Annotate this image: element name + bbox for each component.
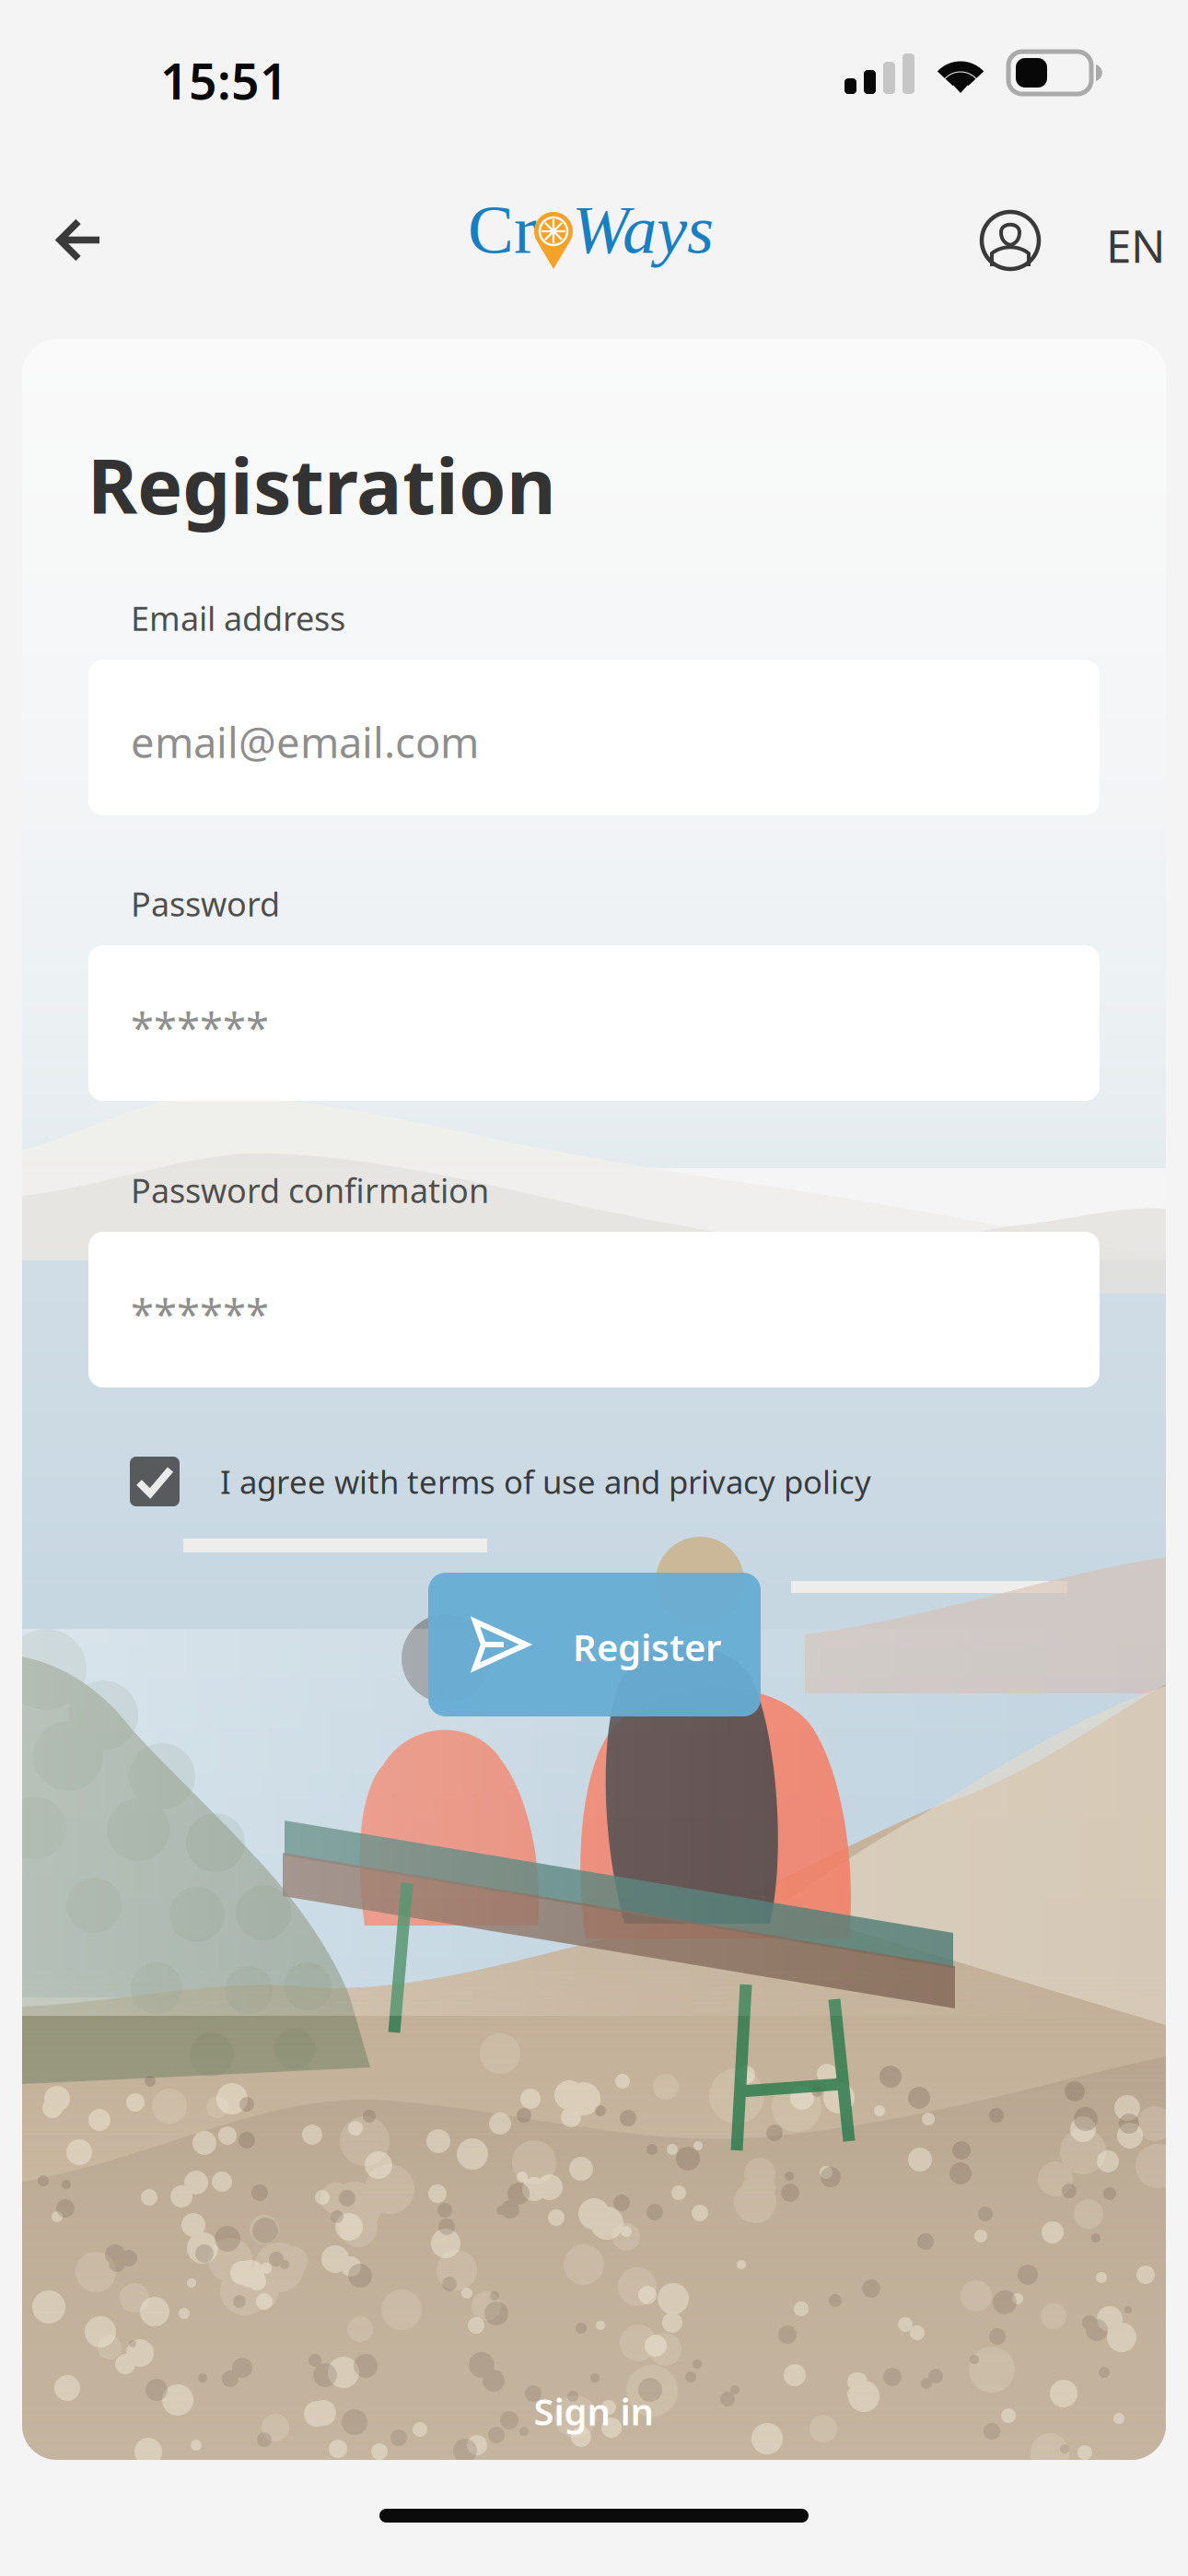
- staticText: Ways: [572, 192, 714, 268]
- staticText: I agree with terms of use and privacy po…: [220, 1460, 871, 1503]
- staticText: EN: [1106, 215, 1165, 275]
- staticText: Password: [131, 882, 280, 926]
- button[interactable]: Back: [28, 189, 131, 292]
- staticText: Password confirmation: [131, 1168, 489, 1212]
- staticText: Cr: [468, 192, 537, 268]
- button[interactable]: Register: [428, 1573, 761, 1716]
- staticText: email@email.com: [131, 714, 479, 769]
- button[interactable]: Account: [961, 191, 1060, 290]
- staticText: Sign in: [534, 2387, 654, 2435]
- button[interactable]: Sign in: [502, 2378, 686, 2444]
- staticText: Email address: [131, 596, 345, 640]
- staticText: 15:51: [160, 48, 288, 113]
- staticText: Registration: [87, 434, 556, 535]
- staticText: ******: [131, 1000, 269, 1055]
- button[interactable]: EN: [1088, 195, 1183, 295]
- staticText: ******: [131, 1286, 269, 1342]
- button[interactable]: I agree with terms of use and privacy po…: [130, 1448, 1051, 1515]
- staticText: Register: [573, 1622, 721, 1671]
